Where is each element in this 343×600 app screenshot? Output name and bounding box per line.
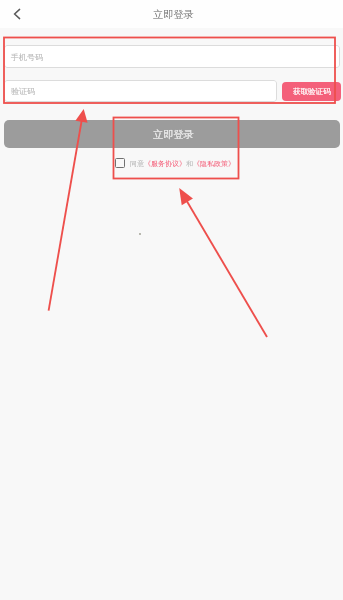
button[interactable]: 《隐私政策》 (193, 159, 235, 168)
staticText: 获取验证码 (293, 87, 331, 96)
button[interactable]: Agree checkbox (115, 158, 125, 168)
button[interactable]: Back (3, 0, 31, 28)
staticText: 验证码 (11, 86, 35, 96)
button[interactable]: 验证码 (4, 80, 277, 102)
button[interactable]: 《服务协议》 (144, 159, 186, 168)
button[interactable]: 手机号码 (4, 45, 340, 68)
staticText: 手机号码 (11, 52, 43, 62)
button[interactable]: 获取验证码 (282, 82, 341, 101)
staticText: 同意 (130, 159, 144, 168)
staticText: 立即登录 (153, 128, 194, 141)
button[interactable]: 立即登录 (4, 120, 340, 148)
staticText: 立即登录 (153, 8, 194, 21)
staticText: 和 (186, 159, 193, 168)
